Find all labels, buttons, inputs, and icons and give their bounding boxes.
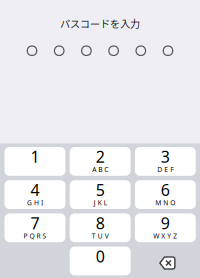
staticText: MNO <box>155 198 175 207</box>
staticText: 8 <box>96 212 105 234</box>
staticText: TUV <box>92 231 109 240</box>
button[interactable]: 2 <box>70 147 131 176</box>
button[interactable]: Delete <box>135 247 196 275</box>
button[interactable]: 3 <box>135 147 196 176</box>
staticText: PQRS <box>23 231 46 240</box>
button[interactable]: 7 <box>4 213 65 242</box>
staticText: JKL <box>94 198 107 207</box>
button[interactable]: 8 <box>70 213 131 242</box>
staticText: 4 <box>30 179 39 200</box>
button[interactable]: 5 <box>70 180 131 209</box>
button[interactable]: 6 <box>135 180 196 209</box>
staticText: 6 <box>161 179 170 200</box>
button[interactable]: 1 <box>4 147 65 176</box>
staticText: 7 <box>30 212 39 234</box>
staticText: DEF <box>157 165 173 174</box>
staticText: 3 <box>161 146 170 167</box>
staticText: 1 <box>30 146 39 167</box>
button[interactable]: 4 <box>4 180 65 209</box>
staticText: 9 <box>161 212 170 234</box>
staticText: 5 <box>96 179 105 200</box>
staticText: 2 <box>96 146 105 167</box>
button[interactable]: 0 <box>70 247 131 275</box>
staticText: ABC <box>92 165 108 174</box>
staticText: GHI <box>27 198 43 207</box>
staticText: WXYZ <box>153 231 177 240</box>
staticText: 0 <box>96 246 105 267</box>
button[interactable]: 9 <box>135 213 196 242</box>
staticText: パスコードを入力 <box>60 16 140 31</box>
